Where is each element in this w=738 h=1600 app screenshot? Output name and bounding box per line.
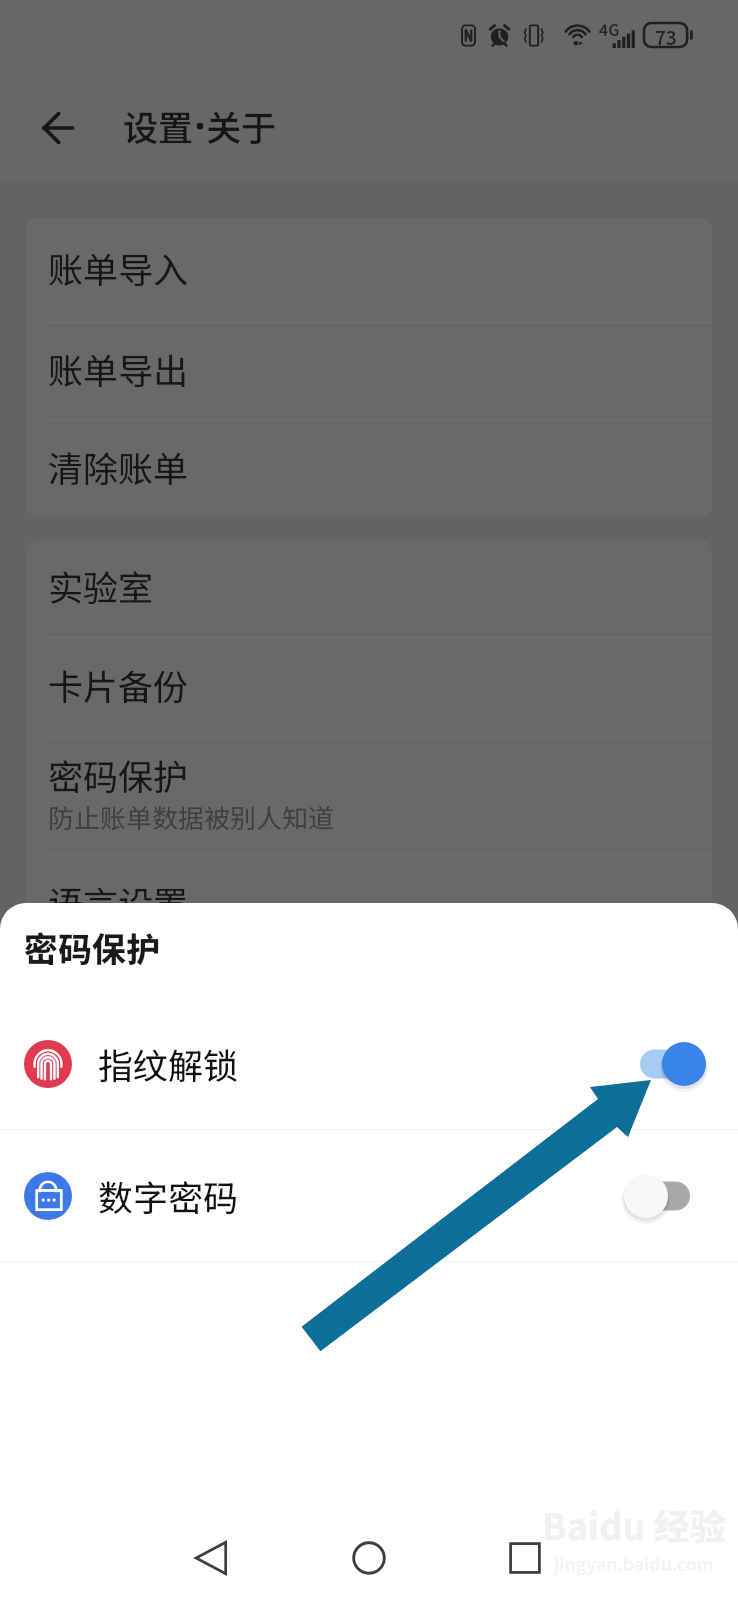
button[interactable]: 数字密码 xyxy=(0,1130,738,1261)
staticText: 关于 xyxy=(206,100,277,151)
button[interactable]: 账单导出 xyxy=(26,323,712,420)
staticText: 设置 xyxy=(123,100,194,151)
button[interactable]: 最近任务 xyxy=(485,1518,565,1598)
button[interactable]: 语言设置 xyxy=(26,855,712,954)
button[interactable]: 实验室 xyxy=(26,540,712,637)
staticText: 实验室 xyxy=(48,560,154,611)
button[interactable]: 密码保护 xyxy=(26,738,712,854)
staticText: Baidu 经验 xyxy=(542,1498,726,1550)
staticText: 73 xyxy=(655,23,677,47)
button[interactable]: 账单导入 xyxy=(26,218,712,322)
button[interactable]: 主页 xyxy=(329,1518,409,1598)
button[interactable]: 指纹解锁 xyxy=(0,998,738,1129)
button[interactable]: 清除账单 xyxy=(26,421,712,517)
staticText: 指纹解锁 xyxy=(98,1038,239,1089)
button[interactable]: 卡片备份 xyxy=(26,638,712,737)
staticText: 卡片备份 xyxy=(48,659,189,710)
button[interactable]: 返回 xyxy=(24,91,92,159)
staticText: 语言设置 xyxy=(48,876,189,927)
staticText: 密码保护 xyxy=(24,923,160,972)
staticText: 数字密码 xyxy=(98,1170,239,1221)
staticText: 4G xyxy=(599,17,620,40)
staticText: jingyan.baidu.com xyxy=(554,1550,714,1576)
staticText: 账单导出 xyxy=(48,343,189,394)
staticText: 账单导入 xyxy=(48,242,189,293)
staticText: 清除账单 xyxy=(48,441,189,492)
button[interactable]: 返回 xyxy=(172,1518,252,1598)
staticText: 密码保护 xyxy=(48,749,189,800)
staticText: 防止账单数据被别人知道 xyxy=(48,798,335,836)
